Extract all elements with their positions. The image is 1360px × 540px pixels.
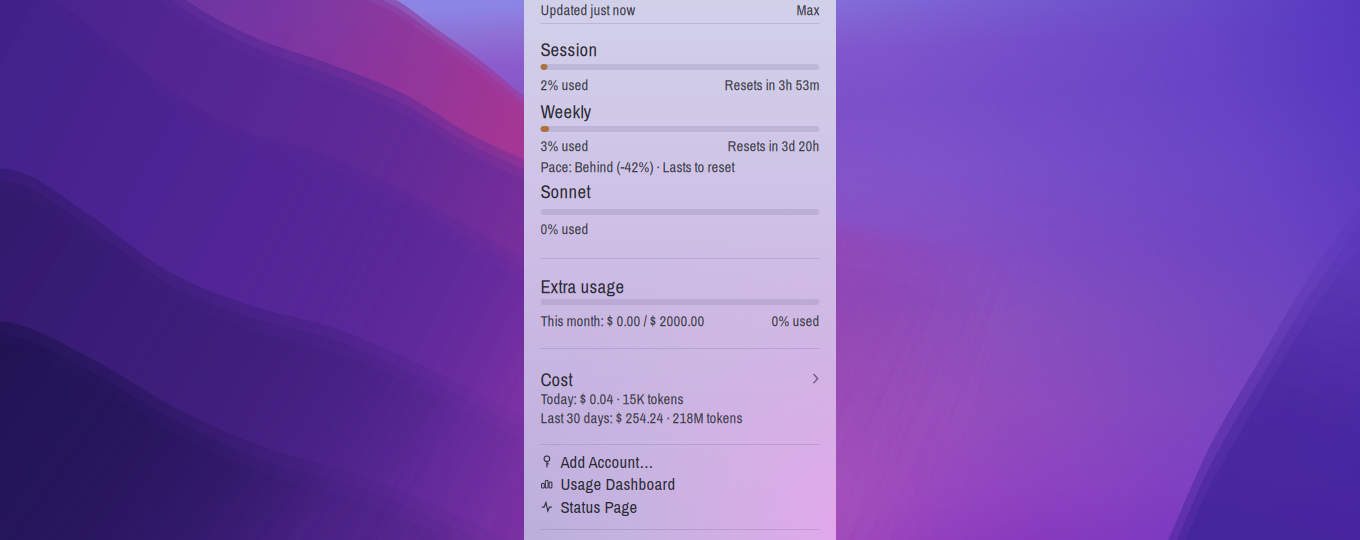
staticText: Last 30 days: $ 254.24 · 218M tokens <box>540 408 742 428</box>
staticText: Status Page <box>560 496 637 518</box>
staticText: Today: $ 0.04 · 15K tokens <box>540 389 683 409</box>
staticText: Usage Dashboard <box>560 473 675 495</box>
staticText: 0% used <box>771 311 819 331</box>
staticText: Session <box>540 37 597 62</box>
staticText: 3% used <box>540 136 588 156</box>
staticText: Resets in 3d 20h <box>727 136 819 156</box>
staticText: Sonnet <box>540 179 590 204</box>
staticText: Updated just now <box>540 0 635 20</box>
button[interactable]: Usage Dashboard <box>540 473 819 495</box>
button[interactable]: Cost <box>540 367 819 429</box>
button[interactable]: Add Account… <box>540 451 819 473</box>
staticText: Pace: Behind (-42%) · Lasts to reset <box>540 157 734 177</box>
staticText: Max <box>796 0 819 20</box>
button[interactable]: Status Page <box>540 496 819 518</box>
staticText: 2% used <box>540 75 588 95</box>
staticText: Add Account… <box>560 451 653 473</box>
staticText: Cost <box>540 367 572 392</box>
staticText: Weekly <box>540 99 591 124</box>
staticText: Extra usage <box>540 274 624 299</box>
staticText: This month: $ 0.00 / $ 2000.00 <box>540 311 704 331</box>
staticText: Resets in 3h 53m <box>724 75 819 95</box>
staticText: 0% used <box>540 219 588 239</box>
